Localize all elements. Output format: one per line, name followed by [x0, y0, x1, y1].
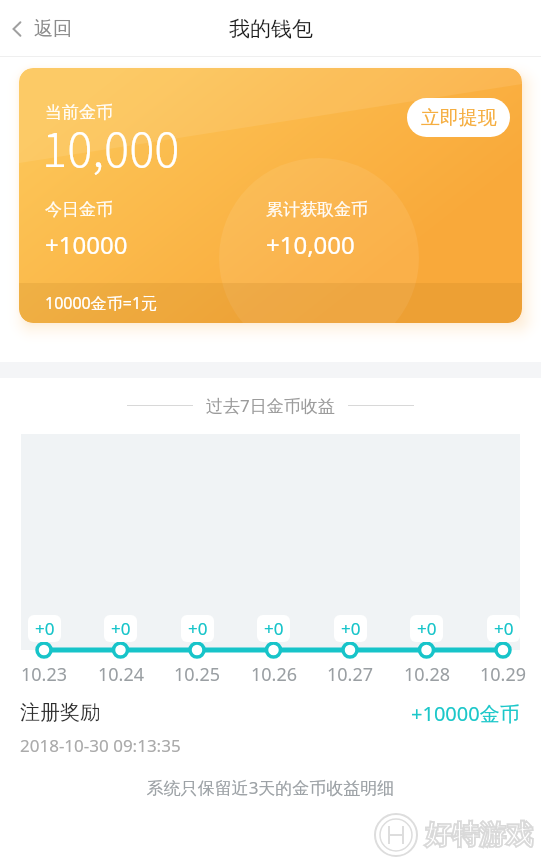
staticText: 返回 [34, 17, 72, 41]
staticText: +10000金币 [411, 700, 520, 727]
staticText: +0 [417, 617, 437, 640]
button[interactable]: 注册奖励 [0, 700, 541, 757]
staticText: 注册奖励 [20, 700, 100, 725]
staticText: 累计获取金币 [266, 199, 368, 220]
staticText: 我的钱包 [229, 16, 313, 42]
staticText: 当前金币 [45, 102, 113, 123]
button[interactable]: 返回 [10, 17, 72, 41]
staticText: +0 [494, 617, 514, 640]
staticText: 10.25 [171, 662, 223, 687]
staticText: +10000 [45, 228, 128, 261]
staticText: 10.27 [324, 662, 376, 687]
staticText: +0 [341, 617, 361, 640]
staticText: 过去7日金币收益 [206, 394, 335, 417]
staticText: +0 [264, 617, 284, 640]
staticText: 10.29 [477, 662, 529, 687]
staticText: +0 [188, 617, 208, 640]
staticText: 好特游戏 [425, 818, 533, 852]
staticText: 系统只保留近3天的金币收益明细 [0, 776, 541, 799]
button[interactable]: 立即提现 [407, 98, 510, 137]
staticText: +0 [35, 617, 55, 640]
staticText: +0 [111, 617, 131, 640]
staticText: 10000金币=1元 [45, 292, 158, 314]
staticText: 10.24 [95, 662, 147, 687]
staticText: 今日金币 [45, 199, 113, 220]
staticText: +10,000 [266, 228, 355, 261]
staticText: 立即提现 [421, 106, 497, 130]
staticText: 10.26 [248, 662, 300, 687]
staticText: 10.23 [18, 662, 70, 687]
staticText: 2018-10-30 09:13:35 [20, 734, 181, 757]
staticText: 10.28 [401, 662, 453, 687]
staticText: 10,000 [42, 112, 180, 180]
